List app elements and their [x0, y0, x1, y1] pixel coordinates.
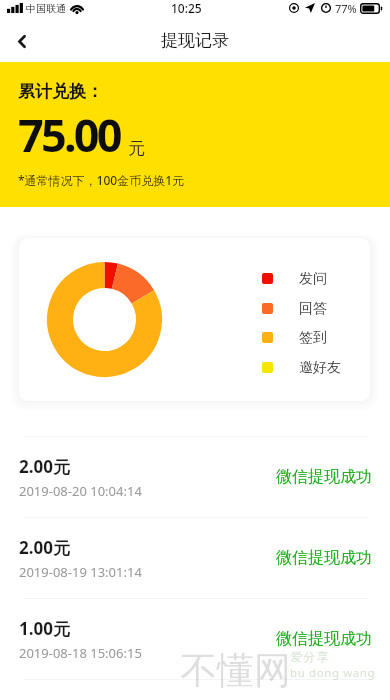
button[interactable]: 签到: [262, 327, 327, 348]
other: Battery 77 percent: [360, 3, 383, 14]
staticText: bu dong wang: [290, 665, 376, 681]
staticText: 爱分享: [290, 649, 330, 664]
button[interactable]: 邀好友: [262, 357, 341, 378]
staticText: 微信提现成功: [276, 548, 372, 568]
staticText: 1.00元: [19, 617, 70, 640]
button[interactable]: 发问: [262, 268, 327, 289]
button[interactable]: 1.00元: [0, 599, 390, 679]
staticText: 中国联通: [26, 2, 66, 15]
staticText: 75.00: [18, 104, 120, 165]
staticText: 10:25: [171, 0, 202, 16]
button[interactable]: 2.00元: [0, 437, 390, 517]
staticText: 2019-08-20 10:04:14: [19, 482, 142, 500]
staticText: 邀好友: [299, 359, 341, 377]
staticText: 签到: [299, 329, 327, 347]
button[interactable]: 2.00元: [0, 518, 390, 598]
staticText: 2.00元: [19, 455, 70, 478]
staticText: 提现记录: [161, 30, 229, 51]
other: Wi-Fi: [70, 3, 84, 14]
button[interactable]: 回答: [262, 298, 327, 319]
staticText: 2.00元: [19, 536, 70, 559]
staticText: 微信提现成功: [276, 629, 372, 649]
button[interactable]: Back: [0, 22, 44, 60]
staticText: 累计兑换：: [18, 81, 103, 102]
staticText: 77%: [335, 1, 357, 16]
staticText: 元: [128, 138, 145, 159]
staticText: 发问: [299, 270, 327, 288]
staticText: *通常情况下，100金币兑换1元: [18, 172, 185, 188]
staticText: 回答: [299, 300, 327, 318]
staticText: 2019-08-18 15:06:15: [19, 644, 142, 662]
staticText: 不懂网: [180, 647, 291, 694]
other: Signal strength: [7, 3, 24, 13]
staticText: 微信提现成功: [276, 467, 372, 487]
staticText: 2019-08-19 13:01:14: [19, 563, 142, 581]
